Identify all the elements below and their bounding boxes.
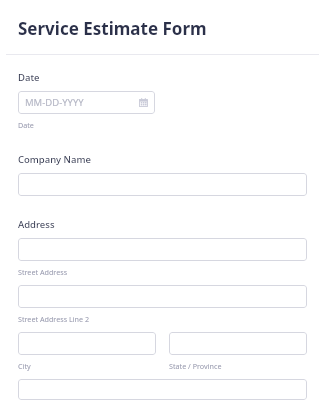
staticText: State / Province [169, 361, 222, 371]
staticText: MM-DD-YYYY [25, 96, 139, 109]
staticText: Street Address Line 2 [18, 314, 90, 324]
staticText: Date [18, 120, 34, 130]
staticText: Street Address [18, 267, 68, 277]
staticText: City [18, 361, 31, 371]
staticText: Address [18, 218, 55, 231]
button[interactable]: Postal or Zip Code input [18, 379, 307, 400]
button[interactable]: Street Address Line 2 input [18, 285, 307, 308]
button[interactable]: Date input, MM-DD-YYYY [18, 91, 155, 114]
button[interactable]: City input [18, 332, 156, 355]
staticText: Company Name [18, 153, 91, 166]
button[interactable]: State or Province input [169, 332, 307, 355]
staticText: Date [18, 71, 40, 84]
button[interactable]: Street Address input [18, 238, 307, 261]
staticText: Service Estimate Form [18, 17, 207, 40]
button[interactable]: Company Name input [18, 173, 307, 196]
